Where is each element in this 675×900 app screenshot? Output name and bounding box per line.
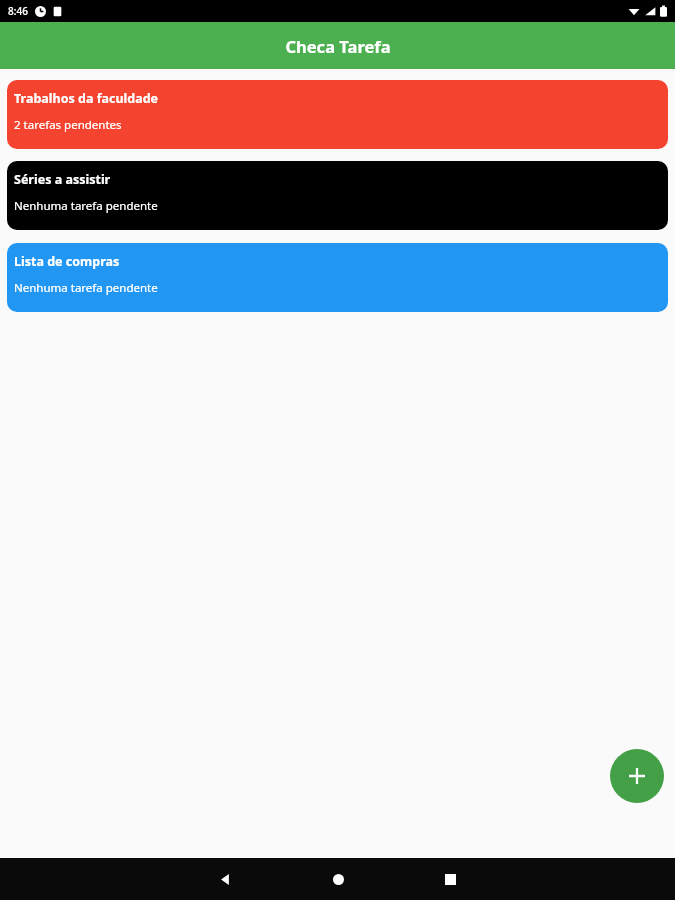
staticText: Nenhuma tarefa pendente — [14, 280, 158, 296]
staticText: 8:46 — [8, 4, 28, 18]
staticText: Checa Tarefa — [285, 35, 391, 57]
button[interactable]: Lista de compras — [7, 243, 668, 312]
button[interactable]: Add task — [610, 749, 664, 803]
staticText: Lista de compras — [14, 253, 120, 270]
button[interactable]: Séries a assistir — [7, 161, 668, 230]
button[interactable]: Home — [324, 865, 352, 893]
button[interactable]: Recent apps — [436, 865, 464, 893]
staticText: Trabalhos da faculdade — [14, 90, 159, 107]
staticText: Séries a assistir — [14, 171, 111, 188]
staticText: Nenhuma tarefa pendente — [14, 198, 158, 214]
button[interactable]: Back — [211, 865, 239, 893]
button[interactable]: Trabalhos da faculdade — [7, 80, 668, 149]
staticText: 2 tarefas pendentes — [14, 117, 122, 133]
